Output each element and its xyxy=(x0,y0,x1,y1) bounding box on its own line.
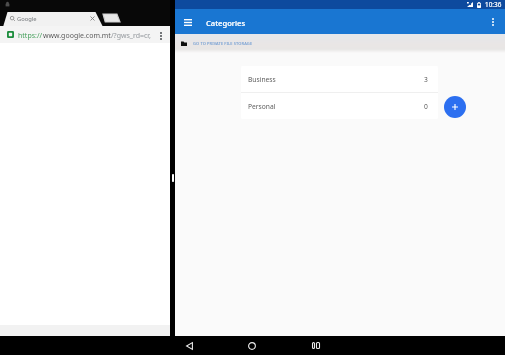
button[interactable]: Business xyxy=(241,66,438,92)
staticText: Personal xyxy=(248,102,276,111)
button[interactable]: GO TO PRIVATE FILE STORAGE xyxy=(175,34,505,53)
staticText: Business xyxy=(248,75,276,84)
staticText: Google xyxy=(17,15,37,23)
button[interactable]: Home xyxy=(238,336,266,355)
staticText: 10:36 xyxy=(485,0,502,9)
button[interactable]: More options xyxy=(157,31,165,41)
staticText: https:// xyxy=(18,31,43,40)
button[interactable]: Back xyxy=(175,336,203,355)
staticText: 0 xyxy=(424,102,428,111)
button[interactable]: Close tab xyxy=(90,16,95,21)
button[interactable]: Recent apps xyxy=(302,336,330,355)
button[interactable]: Open navigation drawer xyxy=(181,15,195,29)
staticText: www.google.com.mt xyxy=(43,31,111,40)
button[interactable]: Add category xyxy=(444,96,466,118)
button[interactable]: More options xyxy=(489,17,497,27)
staticText: 3 xyxy=(424,75,428,84)
staticText: /?gws_rd=cr, xyxy=(111,31,151,40)
staticText: GO TO PRIVATE FILE STORAGE xyxy=(193,41,253,46)
button[interactable]: Personal xyxy=(241,93,438,119)
staticText: Categories xyxy=(206,18,246,28)
